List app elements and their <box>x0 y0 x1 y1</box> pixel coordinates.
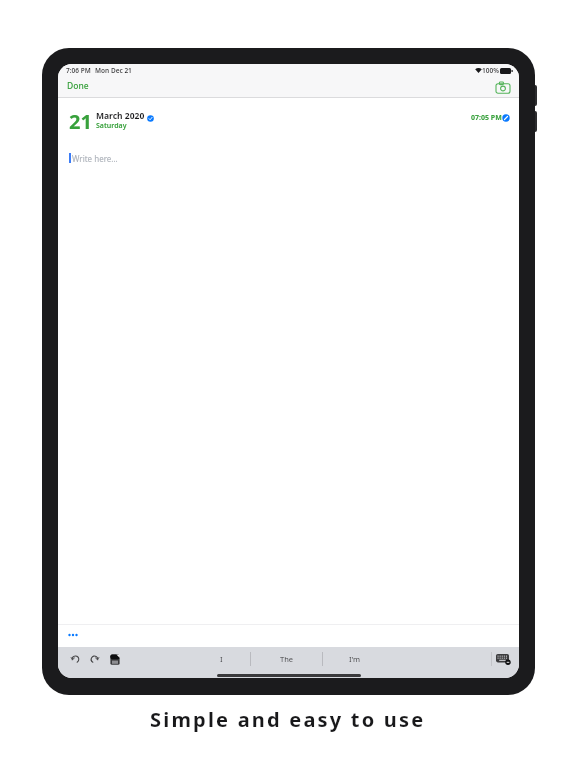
staticText: Mon Dec 21 <box>95 66 132 75</box>
staticText: I <box>220 654 223 664</box>
button[interactable] <box>106 650 124 668</box>
button[interactable]: I'm <box>323 647 387 671</box>
button[interactable]: I <box>192 647 250 671</box>
button[interactable]: The <box>251 647 322 671</box>
staticText: Done <box>67 80 89 92</box>
staticText: Simple and easy to use <box>150 706 426 733</box>
staticText: Saturday <box>96 121 127 131</box>
staticText: I'm <box>349 654 361 664</box>
staticText: March 2020 <box>96 110 145 122</box>
button[interactable]: 07:05 PM <box>463 110 513 126</box>
button[interactable] <box>66 650 84 668</box>
staticText: The <box>280 654 294 664</box>
staticText: 21 <box>69 108 92 135</box>
button[interactable] <box>68 630 80 638</box>
button[interactable] <box>493 80 513 96</box>
button[interactable] <box>494 651 514 667</box>
staticText: 07:05 PM <box>471 113 502 123</box>
button[interactable]: Done <box>64 78 86 90</box>
staticText: 7:06 PM <box>66 66 91 75</box>
staticText: 100% <box>482 66 499 75</box>
button[interactable] <box>85 650 103 668</box>
staticText: Write here... <box>72 153 118 164</box>
